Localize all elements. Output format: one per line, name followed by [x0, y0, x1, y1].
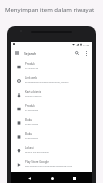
staticText: 11:34: [83, 43, 90, 46]
button[interactable]: Recents: [69, 173, 79, 183]
staticText: en.wikipedia.org/wiki/Operating_system: [25, 81, 69, 84]
button[interactable]: Lokasi: [11, 143, 92, 157]
staticText: Kartu bisnis: [25, 90, 42, 94]
button[interactable]: Produk: [11, 59, 92, 73]
staticText: Firman Chahyo: [25, 95, 42, 98]
button[interactable]: Back: [24, 173, 34, 183]
staticText: 9780439554: [25, 137, 39, 140]
staticText: Produk: [25, 62, 35, 66]
button[interactable]: Link web: [11, 73, 92, 87]
button[interactable]: Search: [73, 49, 81, 57]
staticText: 5123046306: [25, 109, 39, 112]
button[interactable]: Menu: [13, 49, 21, 57]
staticText: Menyimpan item dalam riwayat: [5, 6, 95, 14]
staticText: Sejarah: [24, 51, 37, 56]
staticText: Play Store Google: [25, 160, 49, 164]
button[interactable]: Kartu bisnis: [11, 87, 92, 101]
staticText: 9780134685: [25, 123, 39, 126]
staticText: Link web: [25, 76, 38, 80]
staticText: 3716400146: [25, 67, 39, 70]
staticText: play.google.com/store/apps/details?id=co…: [25, 165, 73, 168]
button[interactable]: Produk: [11, 101, 92, 115]
button[interactable]: Home: [47, 173, 57, 183]
staticText: search the description: [25, 151, 49, 154]
button[interactable]: Play Store Google: [11, 157, 92, 171]
button[interactable]: Buku: [11, 129, 92, 143]
staticText: Buku: [25, 132, 32, 136]
button[interactable]: More options: [82, 49, 90, 57]
staticText: Produk: [25, 104, 35, 108]
staticText: Buku: [25, 118, 32, 122]
button[interactable]: Buku: [11, 115, 92, 129]
staticText: Lokasi: [25, 146, 34, 150]
